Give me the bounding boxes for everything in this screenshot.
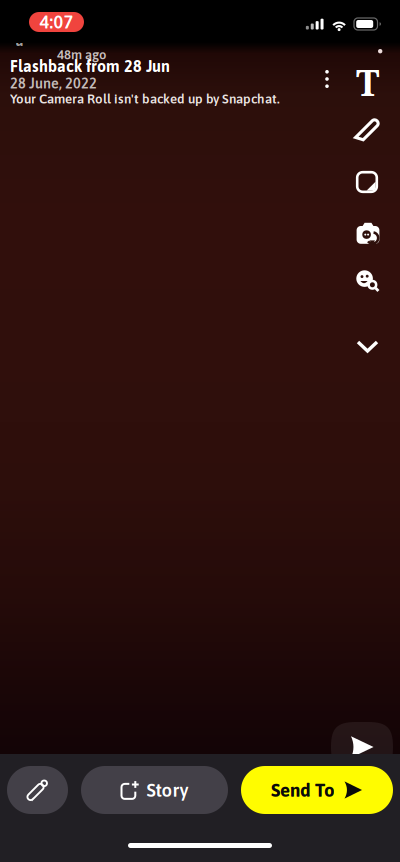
button[interactable]: Lenses <box>355 268 381 294</box>
button[interactable]: Stickers <box>355 170 379 194</box>
staticText: Nostalgia <box>15 15 74 49</box>
staticText: Flashback from 28 Jun <box>10 57 170 75</box>
staticText: Send To <box>271 779 335 801</box>
staticText: T <box>356 57 380 106</box>
button[interactable]: Send snap <box>331 722 393 772</box>
button[interactable]: Draw <box>354 118 380 144</box>
button[interactable]: Story <box>81 766 228 814</box>
button[interactable]: More options <box>316 66 338 92</box>
staticText: 4:07 <box>39 12 73 32</box>
staticText: Story <box>146 779 188 801</box>
button[interactable]: Cutout <box>355 221 381 247</box>
button[interactable]: Text <box>353 66 383 98</box>
button[interactable]: Collapse tools <box>356 340 379 353</box>
staticText: Your Camera Roll isn't backed up by Snap… <box>10 91 280 106</box>
staticText: 48m ago <box>57 47 106 62</box>
staticText: 28 June, 2022 <box>10 75 97 91</box>
button[interactable]: Send To <box>241 766 393 814</box>
button[interactable]: Edit snap <box>7 766 68 814</box>
